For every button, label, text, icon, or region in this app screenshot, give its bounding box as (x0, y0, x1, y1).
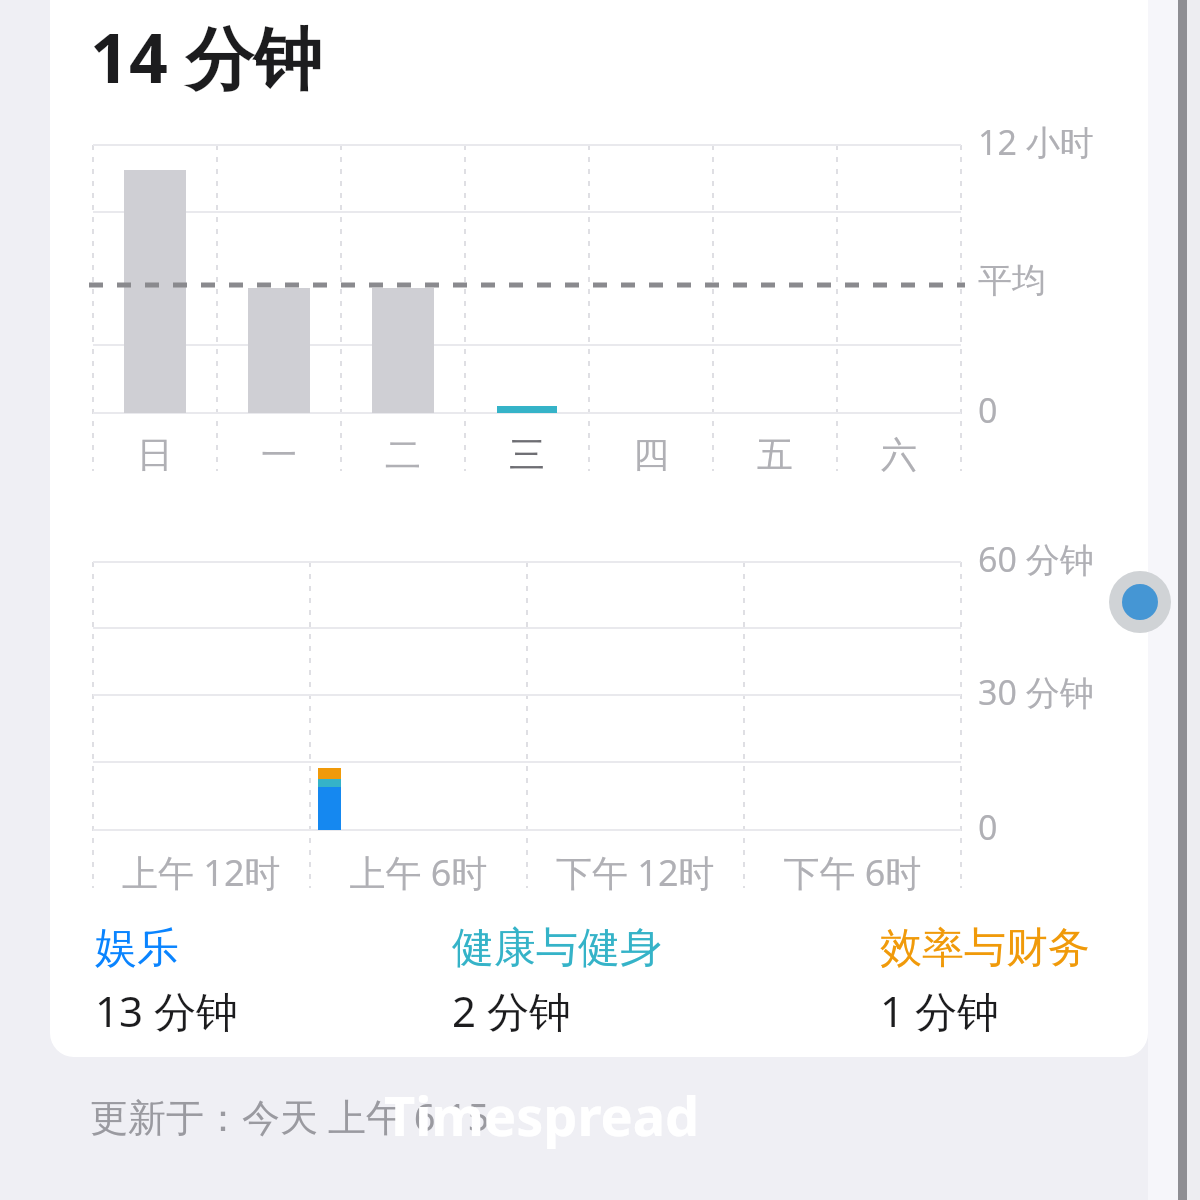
other: Scroll position indicator (0, 0, 1200, 1200)
button[interactable] (0, 0, 1200, 1200)
